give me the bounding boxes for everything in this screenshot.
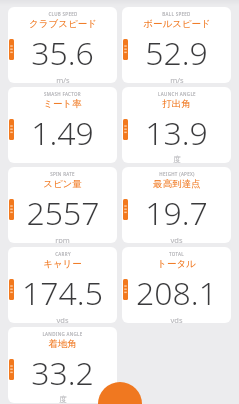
staticText: SPIN RATE [50,171,75,177]
staticText: 35.6 [31,31,94,75]
other: Target indicator [123,199,128,220]
staticText: クラブスピード [29,18,97,30]
button[interactable]: CLUB SPEED [8,7,117,83]
staticText: yds [56,315,69,323]
staticText: 着地角 [48,338,77,350]
staticText: m/s [170,75,184,83]
other: Target indicator [9,119,14,140]
other: Target indicator [9,359,14,380]
staticText: キャリー [43,258,82,270]
staticText: 1.49 [31,111,94,155]
staticText: 13.9 [145,111,208,155]
staticText: スピン量 [43,178,82,190]
staticText: LANDING ANGLE [42,331,83,337]
button[interactable]: LAUNCH ANGLE [122,87,231,163]
staticText: LAUNCH ANGLE [158,91,196,97]
staticText: 2557 [26,191,100,235]
staticText: rpm [55,235,70,243]
staticText: 52.9 [145,31,208,75]
staticText: BALL SPEED [162,11,191,17]
other: Target indicator [9,279,14,300]
staticText: 19.7 [145,191,208,235]
staticText: 174.5 [22,271,103,315]
staticText: yds [170,235,183,243]
button[interactable]: BALL SPEED [122,7,231,83]
other: Target indicator [123,39,128,60]
other: Target indicator [9,199,14,220]
button[interactable]: Add shot [98,382,142,404]
staticText: 最高到達点 [153,178,201,190]
staticText: yds [170,315,183,323]
button[interactable]: SMASH FACTOR [8,87,117,163]
staticText: トータル [157,258,196,270]
staticText: 度 [59,395,67,403]
staticText: 208.1 [136,271,217,315]
button[interactable]: HEIGHT (APEX) [122,167,231,243]
staticText: SMASH FACTOR [44,91,81,97]
staticText: ミート率 [43,98,82,110]
staticText: 33.2 [31,351,94,395]
staticText: HEIGHT (APEX) [159,171,195,177]
staticText: CARRY [55,251,71,257]
staticText: 打出角 [162,98,191,110]
button[interactable]: LANDING ANGLE [8,327,117,403]
staticText: CLUB SPEED [48,11,78,17]
staticText: m/s [56,75,70,83]
button[interactable]: TOTAL [122,247,231,323]
other: Target indicator [123,279,128,300]
button[interactable]: CARRY [8,247,117,323]
button[interactable]: SPIN RATE [8,167,117,243]
other: Target indicator [9,39,14,60]
staticText: TOTAL [169,251,184,257]
other: Target indicator [123,119,128,140]
staticText: 度 [173,155,181,163]
staticText: ボールスピード [143,18,211,30]
